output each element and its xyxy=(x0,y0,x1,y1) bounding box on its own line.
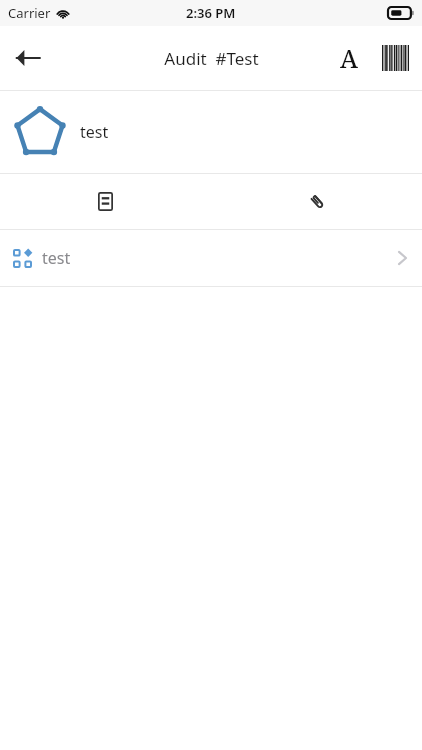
button[interactable]: test xyxy=(0,91,422,173)
button[interactable]: Attachments xyxy=(211,174,422,229)
staticText: test xyxy=(80,121,109,143)
button[interactable]: Notes xyxy=(0,174,211,229)
staticText: Audit #Test xyxy=(164,47,259,70)
button[interactable]: Back xyxy=(4,34,52,82)
button[interactable]: Text size xyxy=(326,35,372,81)
staticText: test xyxy=(42,247,71,269)
staticText: A xyxy=(340,41,358,75)
staticText: Carrier xyxy=(8,4,51,22)
button[interactable]: Scan barcode xyxy=(372,35,418,81)
button[interactable]: test xyxy=(0,230,422,286)
staticText: 2:36 PM xyxy=(186,4,236,22)
